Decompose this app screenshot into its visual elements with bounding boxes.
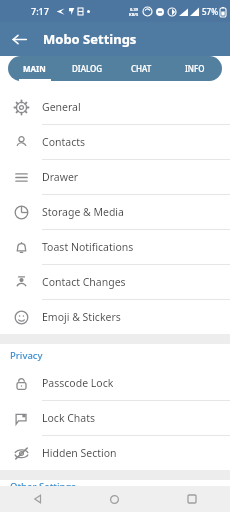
staticText: DIALOG [72,63,103,74]
button[interactable]: Drawer [0,160,230,195]
staticText: CHAT [131,63,152,74]
button[interactable]: Hidden Section [0,436,230,470]
button[interactable]: General [0,90,230,125]
staticText: Emoji & Stickers [42,310,121,324]
button[interactable]: Home [76,486,153,512]
staticText: General [42,100,81,114]
button[interactable]: Emoji & Stickers [0,300,230,334]
staticText: Drawer [42,170,79,184]
staticText: Contacts [42,135,86,149]
staticText: KB/S [129,12,139,17]
staticText: Toast Notifications [42,240,134,254]
button[interactable]: Back [0,486,76,512]
button[interactable]: Lock Chats [0,401,230,436]
button[interactable]: Passcode Lock [0,366,230,401]
button[interactable]: DIALOG [61,56,114,81]
staticText: 7:17 [31,5,49,17]
staticText: Passcode Lock [42,376,114,390]
button[interactable]: MAIN [8,56,61,81]
staticText: Privacy [10,349,43,362]
staticText: MAIN [23,63,46,74]
staticText: Mobo Settings [43,30,137,48]
staticText: INFO [185,63,205,74]
staticText: Hidden Section [42,446,117,460]
button[interactable]: Back [8,28,30,50]
staticText: 0.39 [130,7,138,12]
button[interactable]: Contacts [0,125,230,160]
button[interactable]: Toast Notifications [0,230,230,265]
button[interactable]: Contact Changes [0,265,230,300]
staticText: 57% [202,6,218,17]
staticText: Lock Chats [42,411,96,425]
staticText: Storage & Media [42,205,124,219]
button[interactable]: CHAT [114,56,168,81]
button[interactable]: Storage & Media [0,195,230,230]
button[interactable]: INFO [168,56,222,81]
staticText: Other Settings [10,480,76,486]
button[interactable]: Recent apps [153,486,230,512]
staticText: Contact Changes [42,275,126,289]
